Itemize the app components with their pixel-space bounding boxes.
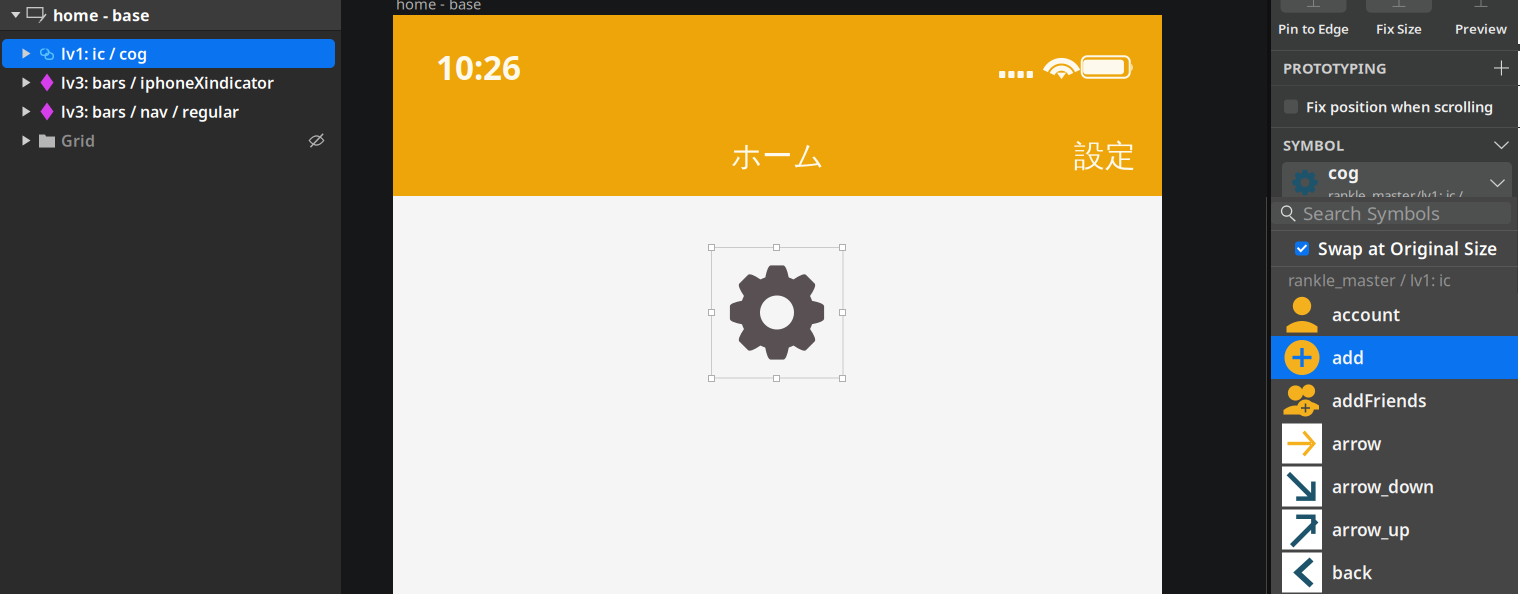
staticText: Preview xyxy=(1455,20,1507,37)
staticText: SYMBOL xyxy=(1283,135,1344,155)
staticText: Fix position when scrolling xyxy=(1306,97,1493,116)
button[interactable]: addFriends xyxy=(1267,379,1518,422)
button[interactable]: Fix Size xyxy=(1366,0,1432,38)
staticText: back xyxy=(1332,561,1372,584)
staticText: lv3: bars / iphoneXindicator xyxy=(61,72,274,93)
button[interactable]: 設定 xyxy=(1074,137,1136,175)
staticText: cog xyxy=(1328,161,1359,184)
button[interactable]: back xyxy=(1267,551,1518,594)
staticText: arrow_down xyxy=(1332,475,1434,498)
staticText: home - base xyxy=(53,4,150,26)
staticText: 10:26 xyxy=(436,45,521,89)
button[interactable]: account xyxy=(1267,293,1518,336)
button[interactable]: Swap at Original Size xyxy=(1267,231,1518,266)
staticText: lv1: ic / cog xyxy=(61,43,147,64)
button[interactable]: lv3: bars / nav / regular xyxy=(0,97,341,126)
staticText: lv3: bars / nav / regular xyxy=(61,101,239,122)
button[interactable]: lv1: ic / cog xyxy=(0,39,341,68)
staticText: Grid xyxy=(61,130,95,151)
button[interactable]: Collapse symbol section xyxy=(1494,140,1509,149)
button[interactable]: Grid xyxy=(0,126,341,155)
button[interactable]: Add prototyping link xyxy=(1494,60,1509,75)
staticText: PROTOTYPING xyxy=(1283,58,1387,78)
staticText: Swap at Original Size xyxy=(1318,237,1497,260)
button[interactable]: Preview xyxy=(1448,0,1514,38)
staticText: add xyxy=(1332,346,1364,369)
staticText: 設定 xyxy=(1074,137,1136,175)
staticText: home - base xyxy=(396,0,481,13)
button[interactable]: arrow xyxy=(1267,422,1518,465)
staticText: Pin to Edge xyxy=(1278,20,1349,37)
button[interactable]: Fix position when scrolling xyxy=(1267,86,1520,127)
button[interactable]: arrow_up xyxy=(1267,508,1518,551)
staticText: arrow_up xyxy=(1332,518,1410,541)
button[interactable]: Pin to Edge xyxy=(1278,0,1349,38)
staticText: Fix Size xyxy=(1376,20,1422,37)
staticText: Search Symbols xyxy=(1303,201,1440,225)
button[interactable]: cog xyxy=(1282,162,1512,203)
staticText: ホーム xyxy=(731,137,824,175)
staticText: arrow xyxy=(1332,432,1381,455)
button[interactable]: lv3: bars / iphoneXindicator xyxy=(0,68,341,97)
staticText: rankle_master / lv1: ic xyxy=(1288,269,1451,291)
staticText: account xyxy=(1332,303,1400,326)
staticText: addFriends xyxy=(1332,389,1427,412)
button[interactable]: arrow_down xyxy=(1267,465,1518,508)
button[interactable]: add xyxy=(1267,336,1518,379)
staticText: rankle_master/lv1: ic / xyxy=(1328,186,1463,204)
